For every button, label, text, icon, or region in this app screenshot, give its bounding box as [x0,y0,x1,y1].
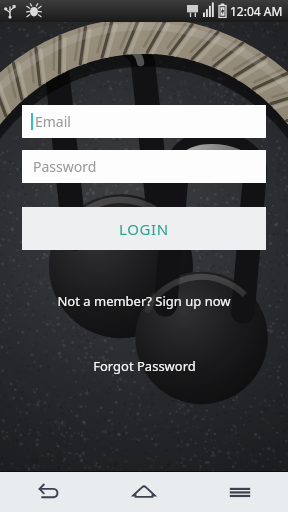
button[interactable]: Home [96,472,192,512]
button[interactable]: Not a member? Sign up now [49,288,239,314]
staticText: 12:04 AM [230,3,283,19]
button[interactable]: LOGIN [22,207,266,250]
button[interactable]: Email [22,105,266,138]
staticText: Forgot Password [93,357,196,375]
button[interactable]: Back [0,472,96,512]
staticText: LOGIN [119,219,169,239]
staticText: Email [35,112,71,131]
staticText: Password [33,157,97,176]
staticText: Not a member? Sign up now [57,292,231,310]
button[interactable]: Menu [192,472,288,512]
button[interactable]: Password [22,150,266,183]
button[interactable]: Forgot Password [85,353,204,379]
